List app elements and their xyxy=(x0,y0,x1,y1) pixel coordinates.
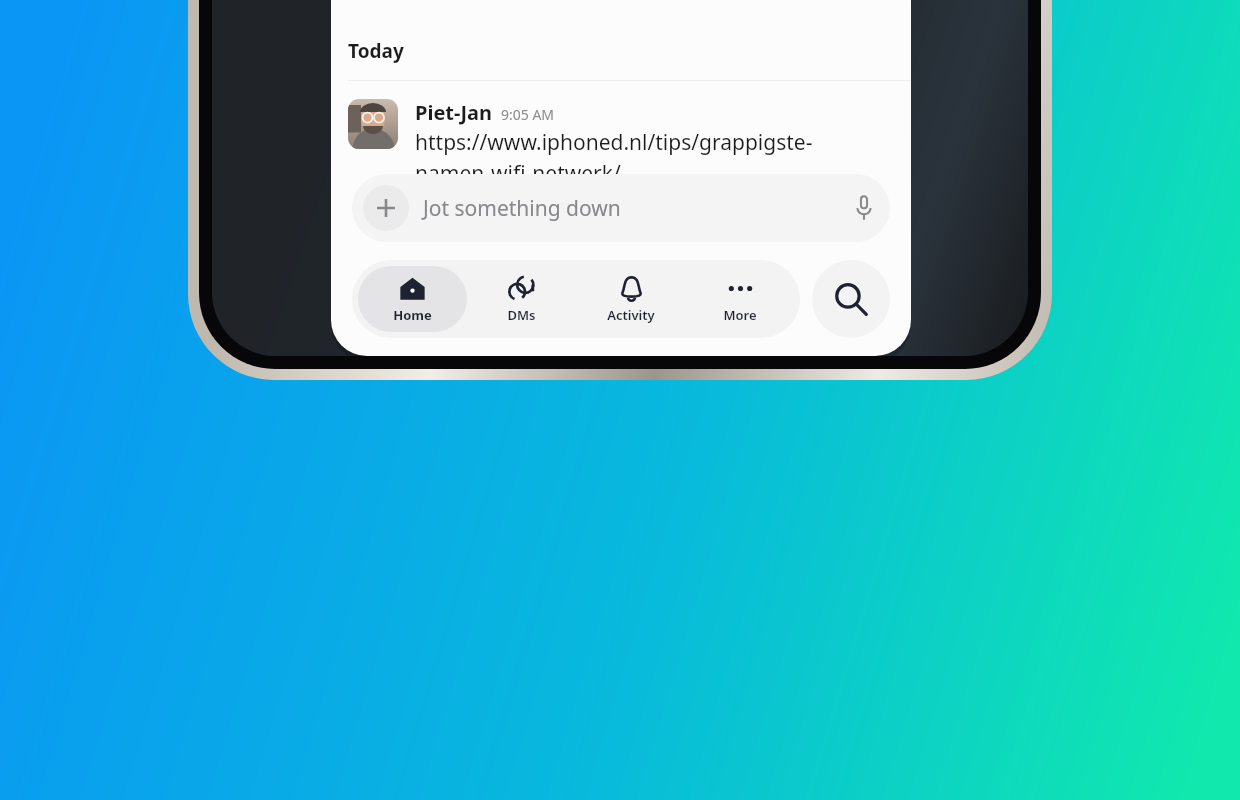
staticText: DMs xyxy=(507,306,536,324)
staticText: Jot something down xyxy=(423,194,853,223)
staticText: https://www.iphoned.nl/tips/grappigste-n… xyxy=(415,128,867,187)
button[interactable]: Search xyxy=(812,260,890,338)
staticText: 9:05 AM xyxy=(501,105,555,124)
staticText: Activity xyxy=(607,306,655,324)
button[interactable]: DMs xyxy=(467,266,576,332)
staticText: More xyxy=(723,306,757,324)
button[interactable]: Activity xyxy=(576,266,685,332)
staticText: Home xyxy=(393,306,432,324)
button[interactable]: Home xyxy=(358,266,467,332)
staticText: Piet-Jan xyxy=(415,99,493,126)
button[interactable]: More xyxy=(685,266,794,332)
button[interactable]: Jot something down xyxy=(352,174,890,242)
staticText: Today xyxy=(348,38,404,64)
